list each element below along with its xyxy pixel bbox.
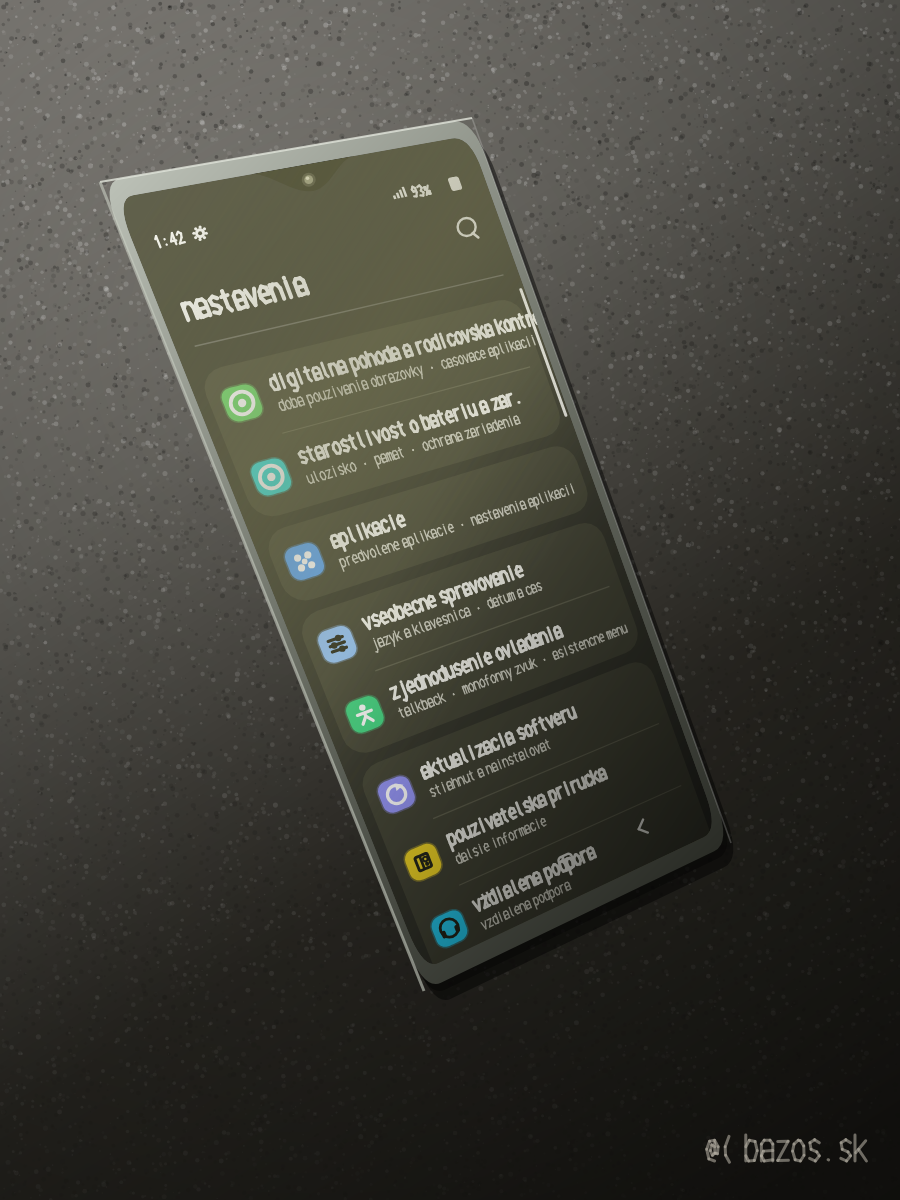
button[interactable]	[180, 300, 400, 540]
button[interactable]: Späť	[600, 810, 640, 850]
button[interactable]	[300, 620, 560, 860]
button[interactable]: Nedávne aplikácie	[470, 890, 510, 930]
button[interactable]: Hľadať	[430, 40, 470, 80]
button[interactable]: Domov	[560, 850, 600, 890]
